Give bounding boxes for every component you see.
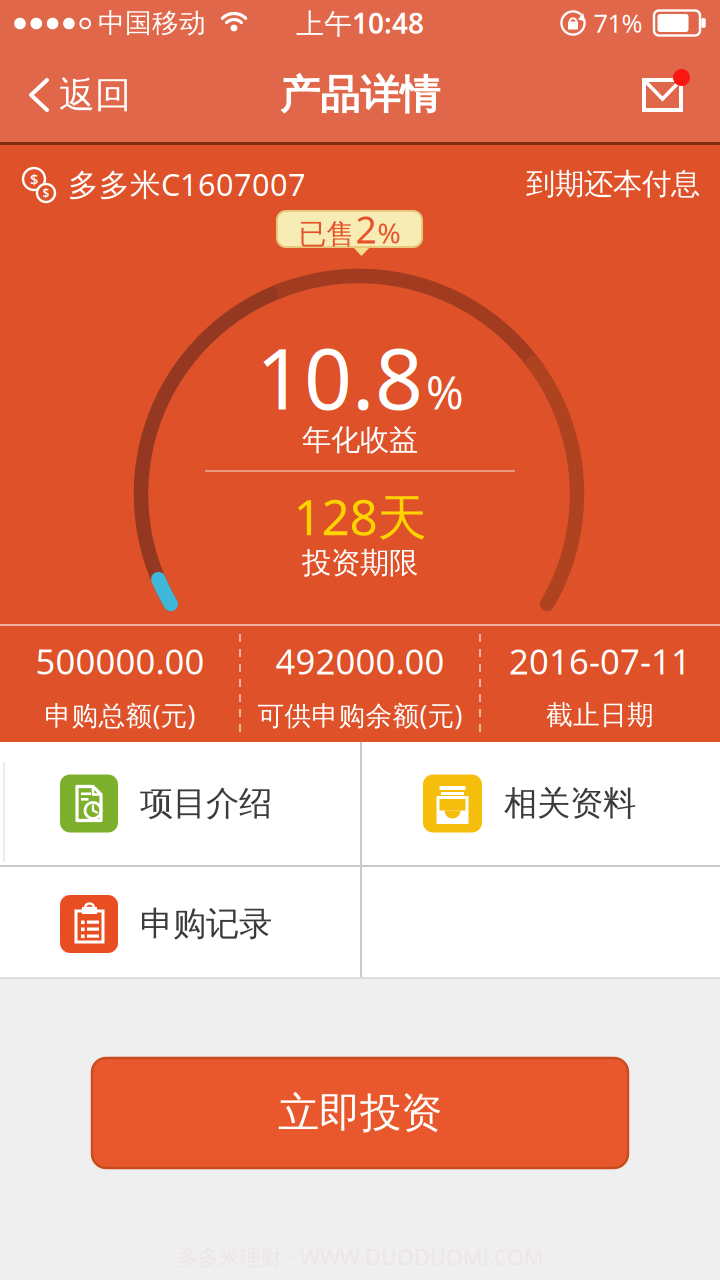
staticText: 2016-07-11	[509, 638, 691, 684]
staticText: 产品详情	[280, 70, 440, 119]
staticText: 年化收益	[302, 422, 418, 458]
staticText: $	[30, 169, 38, 189]
button[interactable]: 相关资料	[361, 742, 719, 864]
staticText: 到期还本付息	[526, 166, 700, 202]
staticText: %	[426, 362, 464, 422]
staticText: 500000.00	[35, 638, 204, 684]
staticText: 多多米理财 · WWW.DUODUOMI.COM	[177, 1243, 543, 1271]
button[interactable]: 返回	[15, 65, 145, 125]
button[interactable]: 申购记录	[0, 869, 359, 979]
button[interactable]: 项目介绍	[0, 742, 359, 864]
staticText: 2	[355, 204, 376, 254]
staticText: 492000.00	[275, 638, 444, 684]
staticText: 返回	[59, 73, 131, 117]
staticText: 已售	[298, 217, 354, 251]
staticText: %	[377, 214, 400, 251]
staticText: 截止日期	[546, 699, 654, 731]
staticText: 申购记录	[140, 903, 272, 944]
staticText: 71%	[593, 6, 642, 40]
staticText: 10.8	[256, 321, 423, 433]
button[interactable]: 消息	[642, 69, 692, 113]
button[interactable]: 立即投资	[92, 1058, 628, 1168]
staticText: 中国移动	[98, 7, 206, 39]
staticText: 128天	[293, 483, 426, 549]
staticText: 多多米C1607007	[68, 164, 306, 204]
staticText: 立即投资	[278, 1088, 442, 1138]
staticText: $	[42, 185, 49, 201]
staticText: 项目介绍	[140, 783, 272, 824]
staticText: 相关资料	[504, 783, 636, 824]
staticText: 可供申购余额(元)	[257, 697, 462, 733]
staticText: 上午10:48	[296, 4, 424, 42]
staticText: 投资期限	[302, 545, 418, 581]
staticText: 申购总额(元)	[44, 697, 195, 733]
